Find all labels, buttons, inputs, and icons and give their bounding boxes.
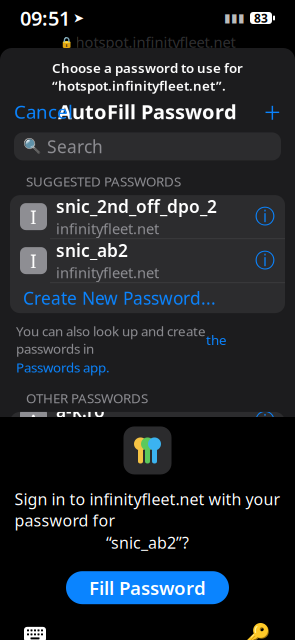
staticText: ➤: [73, 10, 84, 25]
staticText: ⓘ: [255, 409, 275, 433]
staticText: Choose a password to use for “hotspot.in…: [52, 59, 243, 94]
button[interactable]: Add Password: [250, 88, 295, 135]
staticText: ▮▮▮: [224, 11, 245, 25]
staticText: a-k.ro: [56, 399, 105, 422]
staticText: 🔍: [23, 138, 41, 155]
staticText: A: [27, 408, 40, 434]
staticText: SUGGESTED PASSWORDS: [26, 172, 181, 190]
staticText: ⓘ: [255, 248, 275, 273]
staticText: snic_ab2: [56, 239, 128, 262]
button[interactable]: Keyboard: [10, 619, 60, 640]
button[interactable]: I: [10, 195, 285, 238]
staticText: Search: [47, 135, 103, 158]
button[interactable]: Create New Password...: [10, 283, 285, 313]
button[interactable]: I: [10, 239, 285, 282]
staticText: Sign in to infinityfleet.net with your p…: [14, 488, 280, 531]
staticText: I: [30, 203, 37, 230]
staticText: 09:51: [20, 5, 70, 31]
staticText: snic_2nd_off_dpo_2: [56, 195, 217, 218]
staticText: Fill Password: [89, 575, 206, 600]
staticText: 83: [254, 10, 268, 26]
staticText: infinityfleet.net: [56, 219, 159, 238]
button[interactable]: A: [10, 443, 285, 486]
staticText: hotspot.infinityfleet.net: [75, 32, 235, 52]
button[interactable]: 🔍: [14, 132, 281, 160]
staticText: “snic_ab2”?: [106, 532, 189, 553]
staticText: +: [264, 92, 281, 131]
staticText: the: [206, 331, 227, 349]
staticText: infinityfleet.net: [56, 263, 159, 282]
staticText: 🔑: [244, 622, 271, 640]
staticText: You can also look up and create password…: [16, 322, 206, 357]
button[interactable]: Passwords: [230, 614, 285, 640]
staticText: I: [30, 247, 37, 274]
staticText: OTHER PASSWORDS: [26, 389, 148, 407]
button[interactable]: You can also look up and create password…: [16, 322, 279, 376]
button[interactable]: Fill Password: [66, 571, 229, 604]
staticText: ⓘ: [255, 204, 275, 229]
staticText: Passwords app.: [16, 358, 110, 376]
staticText: 🔒: [59, 36, 72, 48]
staticText: Cancel: [14, 99, 73, 124]
staticText: AutoFill Password: [58, 98, 237, 125]
staticText: Create New Password...: [23, 287, 216, 310]
button[interactable]: A: [10, 399, 285, 442]
button[interactable]: Cancel: [0, 91, 87, 132]
staticText: ainsentri.ro: [56, 443, 155, 466]
